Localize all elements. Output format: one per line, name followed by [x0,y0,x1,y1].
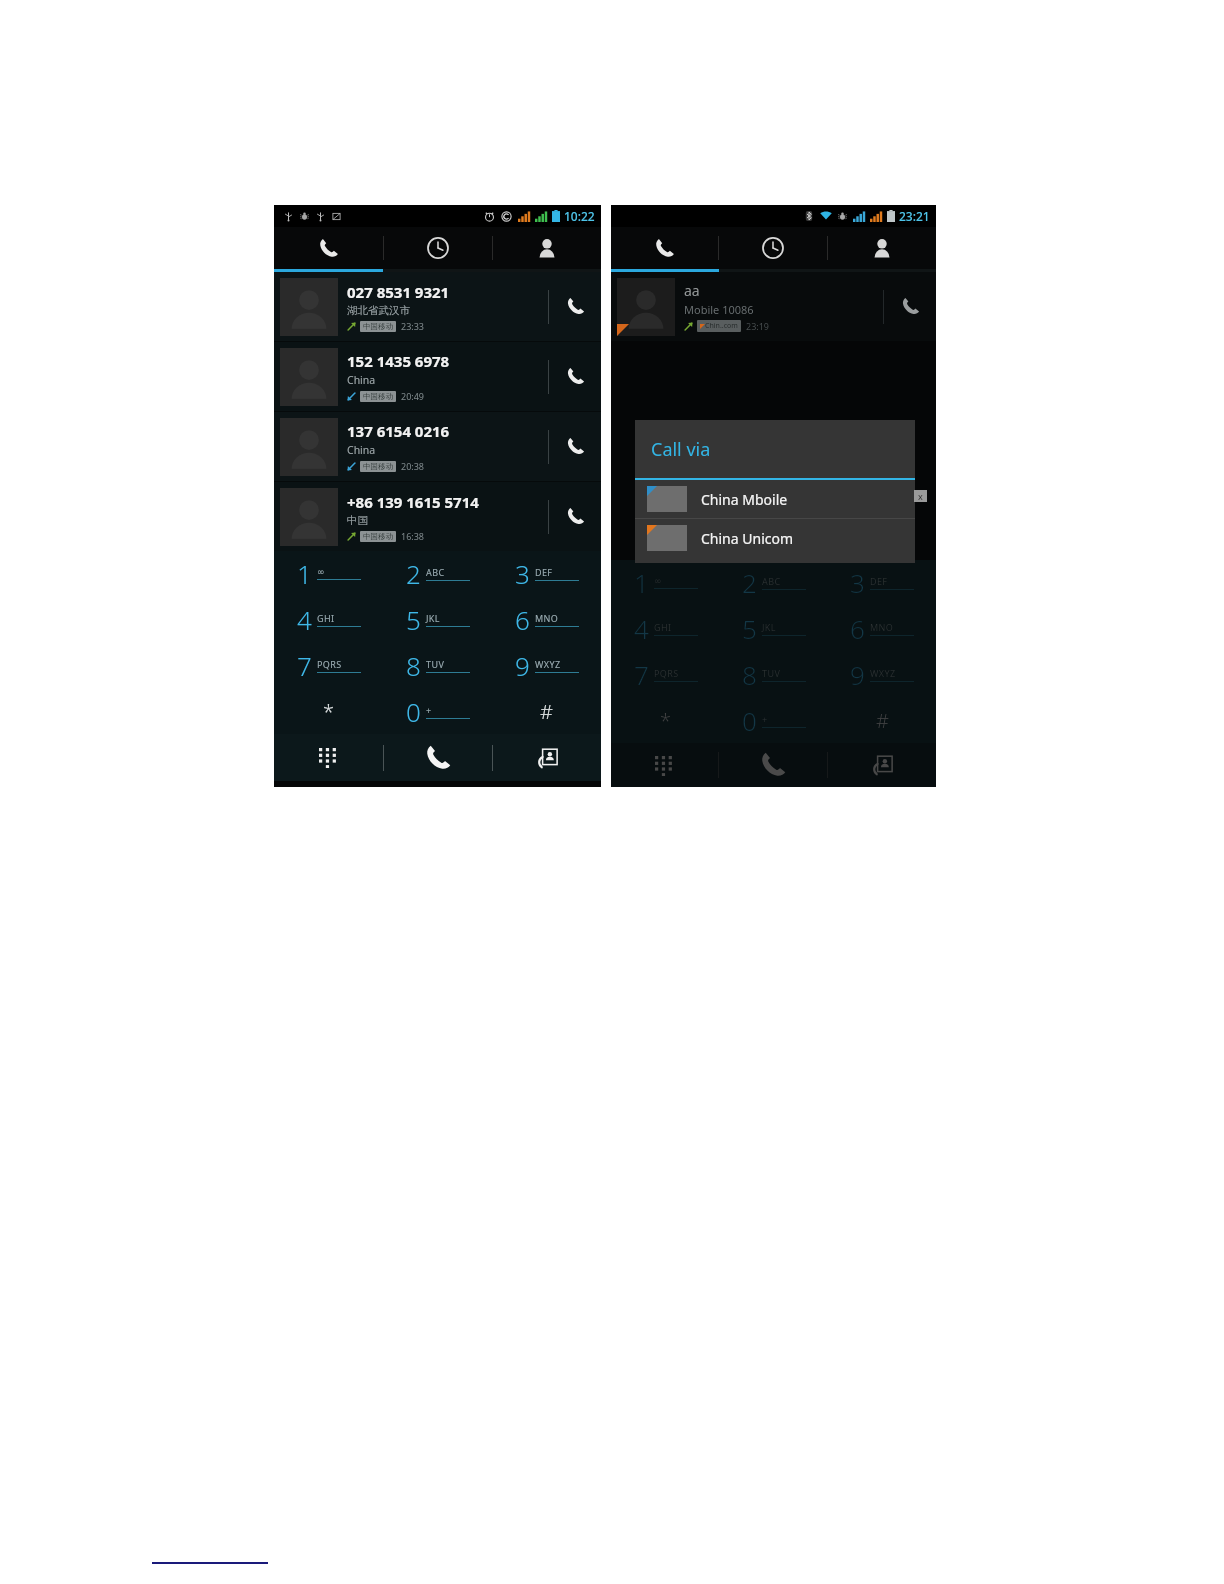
staticText: 0 [742,703,757,738]
button[interactable]: Call 137 6154 0216 [549,412,601,481]
staticText: 5 [406,602,421,637]
staticText: + [762,713,768,725]
staticText: China Mboile [701,490,788,509]
staticText: Call via [651,437,711,462]
button[interactable]: 6 [492,596,601,642]
staticText: 1 [634,565,649,600]
button[interactable]: 1 [611,560,720,605]
button[interactable]: China Unicom [635,519,915,557]
staticText: +86 139 1615 5714 [347,492,479,512]
button[interactable]: Dialer tab [611,227,718,269]
button[interactable]: # [828,697,936,743]
staticText: GHI [654,621,672,633]
button[interactable]: 0 [383,688,492,734]
button[interactable]: Call 027 8531 9321 [549,272,601,341]
button[interactable]: 152 1435 6978 [274,342,601,411]
staticText: ∞ [654,576,662,586]
button[interactable]: 9 [492,642,601,688]
button[interactable]: 7 [274,642,383,688]
staticText: WXYZ [870,667,896,679]
button[interactable]: 3 [828,560,936,605]
button[interactable]: Call +86 139 1615 5714 [549,482,601,551]
staticText: JKL [426,612,440,624]
staticText: 5 [742,611,757,646]
button[interactable]: 0 [720,697,828,743]
button[interactable]: Close [914,490,927,502]
button[interactable]: 4 [274,596,383,642]
button[interactable]: 027 8531 9321 [274,272,601,341]
staticText: 中国移动 [363,532,393,541]
staticText: 9 [515,648,530,683]
staticText: 2 [742,565,757,600]
staticText: 10:22 [564,208,595,224]
button[interactable]: Call 152 1435 6978 [549,342,601,411]
button[interactable]: Call log tab [719,227,827,269]
staticText: 20:49 [401,390,425,402]
staticText: 8 [406,648,421,683]
staticText: 23:21 [899,208,930,224]
staticText: # [876,707,889,734]
button[interactable]: +86 139 1615 5714 [274,482,601,551]
button[interactable]: 137 6154 0216 [274,412,601,481]
button[interactable]: Add contact [828,743,936,787]
button[interactable]: 5 [383,596,492,642]
staticText: 152 1435 6978 [347,351,450,371]
staticText: Mobile 10086 [684,302,754,317]
button[interactable]: * [274,688,383,734]
button[interactable]: 6 [828,605,936,651]
button[interactable]: aa [611,272,936,341]
button[interactable]: Call aa [884,272,936,341]
button[interactable]: Dialpad [274,734,383,781]
staticText: China Unicom [701,529,794,548]
button[interactable]: Dialpad [611,743,718,787]
button[interactable]: # [492,688,601,734]
button[interactable]: 3 [492,551,601,596]
staticText: 1 [297,556,312,591]
staticText: 9 [850,657,865,692]
button[interactable]: Call [384,734,492,781]
staticText: # [540,698,553,725]
staticText: TUV [426,658,445,670]
staticText: TUV [762,667,781,679]
button[interactable]: 1 [274,551,383,596]
staticText: 4 [297,602,312,637]
staticText: 中国移动 [363,392,393,401]
staticText: ABC [762,575,781,587]
staticText: 3 [850,565,865,600]
staticText: 2 [406,556,421,591]
button[interactable]: 2 [720,560,828,605]
button[interactable]: Add contact [493,734,601,781]
button[interactable]: Contacts tab [493,227,601,269]
button[interactable]: 7 [611,651,720,697]
staticText: 中国移动 [363,322,393,331]
staticText: China [347,373,376,387]
staticText: MNO [535,612,559,624]
staticText: 湖北省武汉市 [347,304,410,317]
button[interactable]: Call log tab [384,227,492,269]
staticText: MNO [870,621,894,633]
staticText: ABC [426,566,445,578]
button[interactable]: Contacts tab [828,227,936,269]
staticText: aa [684,281,700,300]
button[interactable]: Dialer tab [274,227,383,269]
staticText: * [660,707,672,734]
staticText: 16:38 [401,530,425,542]
staticText: 8 [742,657,757,692]
button[interactable]: 8 [383,642,492,688]
button[interactable]: 9 [828,651,936,697]
staticText: 3 [515,556,530,591]
button[interactable]: 4 [611,605,720,651]
button[interactable]: Call [719,743,827,787]
staticText: 027 8531 9321 [347,282,450,302]
staticText: 中国 [347,514,368,527]
staticText: 中国移动 [363,462,393,471]
button[interactable]: 2 [383,551,492,596]
staticText: * [323,698,335,725]
staticText: 7 [297,648,312,683]
staticText: x [918,490,923,502]
button[interactable]: China Mboile [635,480,915,518]
staticText: 137 6154 0216 [347,421,450,441]
button[interactable]: 5 [720,605,828,651]
button[interactable]: 8 [720,651,828,697]
